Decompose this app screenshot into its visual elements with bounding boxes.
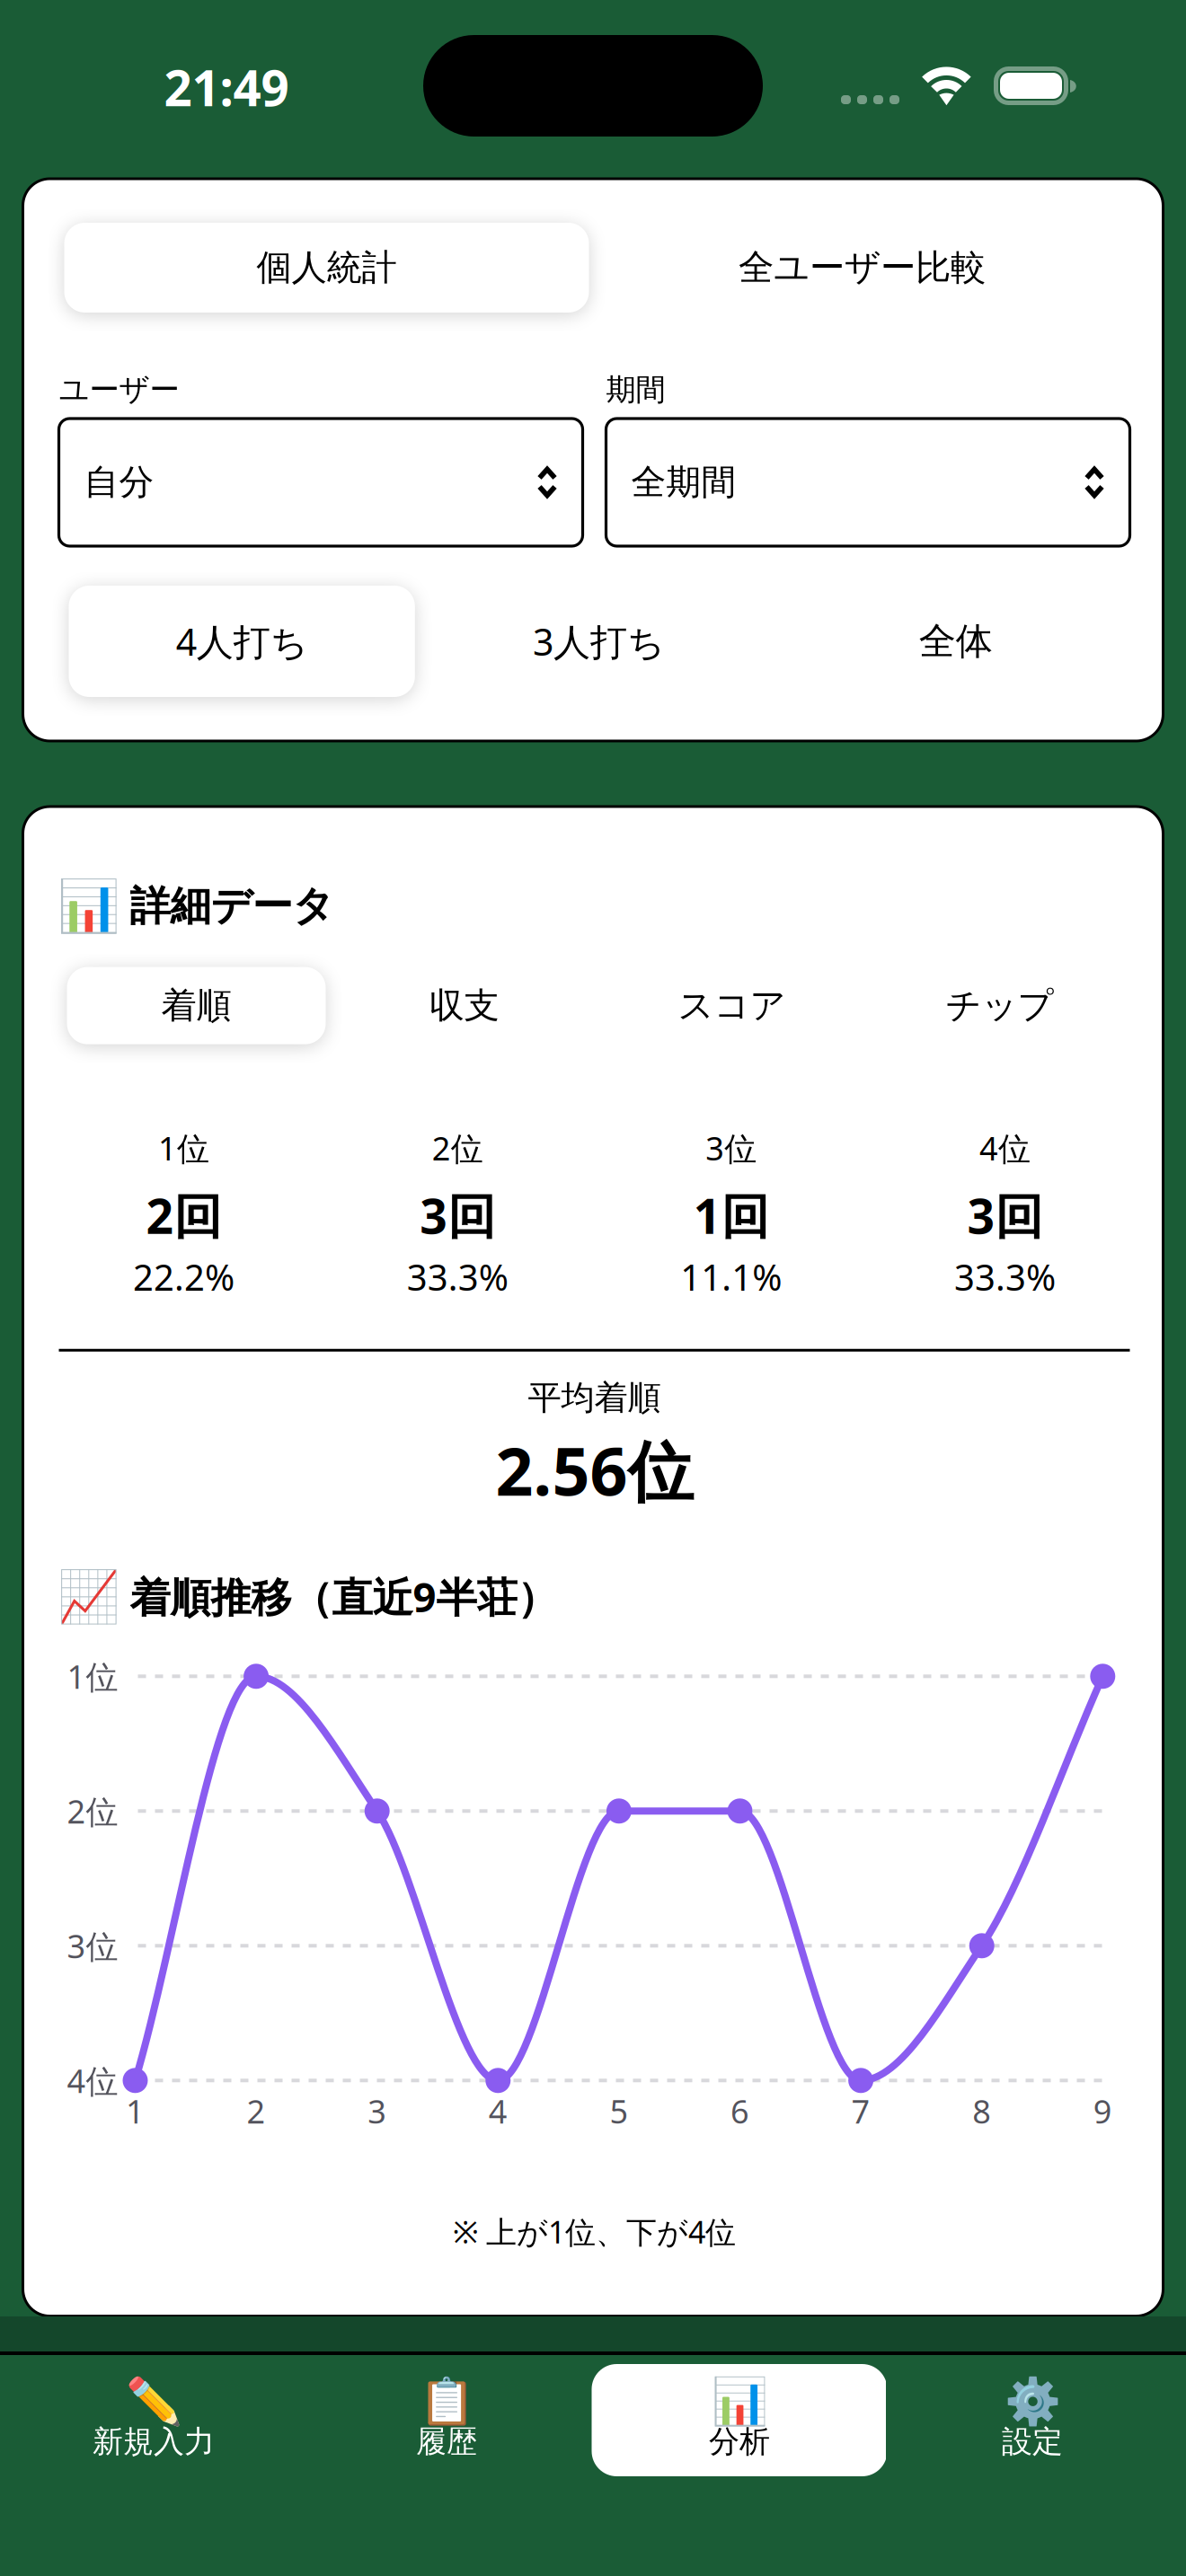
staticText: 1 <box>126 2089 145 2133</box>
button[interactable]: 3人打ち <box>420 580 777 702</box>
staticText: 33.3% <box>407 1252 508 1301</box>
button[interactable]: 個人統計 <box>59 217 594 318</box>
staticText: 📊 <box>57 877 120 936</box>
staticText: 設定 <box>1002 2422 1063 2461</box>
staticText: 11.1% <box>681 1252 782 1301</box>
button[interactable]: 収支 <box>330 962 598 1049</box>
staticText: ※ 上が1位、下が4位 <box>453 2211 736 2252</box>
button[interactable]: 自分 <box>59 419 583 546</box>
staticText: 新規入力 <box>93 2422 215 2461</box>
button[interactable]: スコア <box>598 962 866 1049</box>
staticText: ⚙️ <box>1004 2375 1061 2428</box>
button[interactable]: 全期間 <box>606 419 1130 546</box>
staticText: ユーザー <box>59 371 179 409</box>
staticText: 21:49 <box>164 54 289 121</box>
staticText: 5 <box>610 2089 628 2133</box>
staticText: 分析 <box>709 2422 770 2461</box>
staticText: 2.56位 <box>496 1425 693 1515</box>
staticText: 着順 <box>161 983 231 1028</box>
staticText: 4位 <box>979 1126 1031 1170</box>
staticText: 33.3% <box>954 1252 1056 1301</box>
staticText: 履歴 <box>416 2422 477 2461</box>
staticText: 4 <box>489 2089 507 2133</box>
button[interactable]: 全体 <box>777 580 1134 702</box>
staticText: 3位 <box>706 1126 757 1170</box>
staticText: 平均着順 <box>528 1377 661 1419</box>
button[interactable]: 4人打ち <box>63 580 420 702</box>
staticText: 着順推移（直近9半荘） <box>130 1569 558 1624</box>
button[interactable]: ✏️ <box>7 2355 300 2499</box>
button[interactable]: 全ユーザー比較 <box>594 217 1130 318</box>
staticText: 📊 <box>711 2375 768 2428</box>
button[interactable]: 📋 <box>300 2355 593 2499</box>
button[interactable]: 着順 <box>62 962 330 1049</box>
staticText: 3回 <box>420 1183 495 1248</box>
staticText: 3人打ち <box>533 616 665 666</box>
staticText: 8 <box>972 2089 991 2133</box>
staticText: 全ユーザー比較 <box>739 245 986 290</box>
staticText: 全体 <box>919 618 993 664</box>
staticText: 1回 <box>694 1183 769 1248</box>
staticText: 1位 <box>158 1126 209 1170</box>
staticText: 2位 <box>432 1126 483 1170</box>
staticText: 22.2% <box>133 1252 234 1301</box>
button[interactable]: チップ <box>866 962 1133 1049</box>
staticText: 1位 <box>67 1654 118 1698</box>
staticText: 7 <box>851 2089 870 2133</box>
staticText: 期間 <box>606 371 665 409</box>
button[interactable]: 📊 <box>593 2355 886 2499</box>
staticText: 4位 <box>67 2058 118 2102</box>
staticText: 9 <box>1093 2089 1112 2133</box>
staticText: 全期間 <box>631 460 736 504</box>
staticText: 詳細データ <box>130 880 334 932</box>
staticText: 3位 <box>67 1924 118 1968</box>
staticText: 2回 <box>146 1183 221 1248</box>
staticText: ✏️ <box>125 2375 182 2428</box>
staticText: 3 <box>368 2089 387 2133</box>
staticText: 3回 <box>967 1183 1043 1248</box>
staticText: 自分 <box>84 460 154 504</box>
staticText: スコア <box>678 983 786 1028</box>
staticText: 収支 <box>429 983 499 1028</box>
staticText: チップ <box>946 983 1053 1028</box>
staticText: 📋 <box>418 2375 475 2428</box>
staticText: 📈 <box>57 1567 120 1626</box>
staticText: 2 <box>247 2089 266 2133</box>
staticText: 個人統計 <box>257 245 397 290</box>
button[interactable]: ⚙️ <box>886 2355 1179 2499</box>
staticText: 6 <box>730 2089 749 2133</box>
staticText: 4人打ち <box>176 616 308 666</box>
staticText: 2位 <box>67 1789 118 1833</box>
